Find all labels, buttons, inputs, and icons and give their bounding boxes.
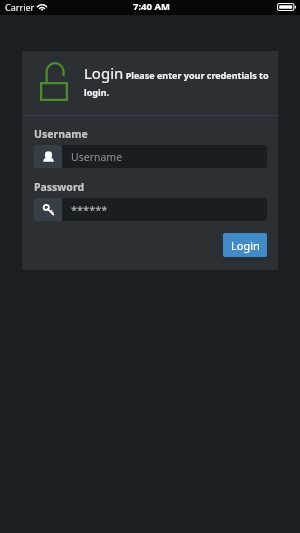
button[interactable]: Login (223, 233, 267, 257)
staticText: Login Please enter your credentials to l… (84, 63, 274, 99)
other: Username (43, 151, 54, 162)
staticText: Password (34, 180, 85, 194)
button[interactable]: Username (34, 145, 267, 168)
staticText: Username (71, 150, 123, 164)
staticText: Carrier (5, 1, 35, 13)
staticText: Username (34, 127, 88, 141)
other: Password (43, 204, 54, 215)
staticText: ****** (71, 202, 108, 217)
staticText: Login (231, 238, 260, 253)
button[interactable]: Password (34, 198, 267, 221)
staticText: 7:40 AM (133, 0, 170, 13)
